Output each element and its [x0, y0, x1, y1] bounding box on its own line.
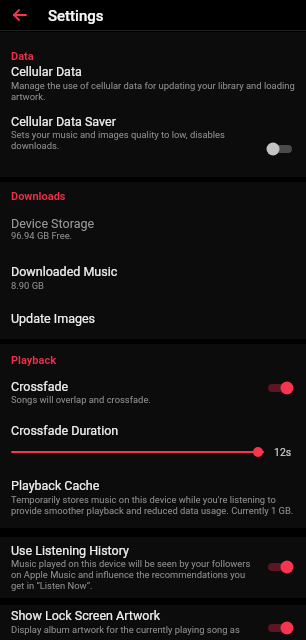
- staticText: 96.94 GB Free.: [11, 230, 295, 241]
- staticText: Crossfade Duration: [11, 423, 119, 438]
- button[interactable]: [8, 5, 30, 25]
- button[interactable]: [0, 258, 306, 300]
- staticText: Update Images: [11, 311, 96, 326]
- button[interactable]: [0, 110, 306, 160]
- button[interactable]: [266, 621, 294, 635]
- button[interactable]: [266, 560, 294, 574]
- button[interactable]: [0, 540, 306, 599]
- staticText: Playback Cache: [11, 478, 100, 493]
- button[interactable]: [0, 306, 306, 340]
- staticText: 8.90 GB: [11, 280, 295, 291]
- button[interactable]: [0, 60, 306, 108]
- staticText: Songs will overlap and crossfade.: [11, 394, 259, 405]
- button[interactable]: [266, 381, 294, 395]
- staticText: Manage the use of cellular data for upda…: [11, 80, 299, 102]
- staticText: Cellular Data: [11, 64, 82, 79]
- staticText: Show Lock Screen Artwork: [11, 608, 160, 623]
- button[interactable]: [0, 605, 306, 640]
- staticText: Use Listening History: [11, 543, 129, 558]
- staticText: Downloaded Music: [11, 264, 118, 279]
- staticText: Cellular Data Saver: [11, 114, 116, 129]
- button[interactable]: [0, 418, 306, 466]
- button[interactable]: [0, 374, 306, 412]
- staticText: Device Storage: [11, 216, 95, 231]
- staticText: Data: [11, 50, 34, 63]
- staticText: Music played on this device will be seen…: [11, 558, 259, 591]
- button[interactable]: [0, 474, 306, 534]
- staticText: Downloads: [11, 190, 66, 203]
- staticText: Temporarily stores music on this device …: [11, 494, 299, 516]
- staticText: Playback: [11, 354, 57, 367]
- button[interactable]: [266, 142, 294, 156]
- staticText: Sets your music and images quality to lo…: [11, 129, 259, 151]
- staticText: Display album artwork for the currently …: [11, 624, 259, 635]
- staticText: Crossfade: [11, 379, 69, 394]
- button[interactable]: [0, 208, 306, 250]
- staticText: Settings: [48, 7, 104, 25]
- staticText: 12s: [274, 446, 292, 458]
